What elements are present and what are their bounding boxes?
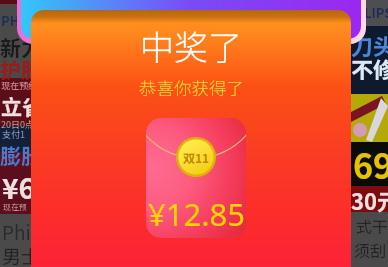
staticText: ¥12.85: [148, 193, 245, 235]
button[interactable]: 中奖了: [31, 10, 351, 267]
staticText: ¥6: [2, 167, 34, 208]
staticText: 69: [353, 140, 388, 189]
staticText: 立省: [1, 91, 34, 121]
staticText: 男士: [2, 242, 34, 267]
staticText: Phili: [2, 218, 34, 246]
staticText: 支付1: [2, 128, 25, 141]
staticText: 20日0点: [1, 118, 34, 131]
staticText: 刀头: [351, 29, 388, 61]
staticText: 膨胀: [0, 140, 34, 170]
staticText: 双11: [183, 149, 210, 166]
staticText: 30元: [351, 184, 388, 216]
staticText: 新力: [0, 32, 34, 62]
staticText: 护肤: [0, 54, 34, 84]
staticText: PH: [1, 11, 20, 30]
staticText: 须刮: [354, 238, 387, 261]
staticText: 不修: [351, 52, 388, 84]
staticText: 式干: [356, 214, 388, 237]
staticText: 现在预约: [1, 79, 34, 92]
staticText: 现在预: [3, 201, 27, 213]
staticText: 恭喜你获得了: [139, 75, 244, 100]
staticText: 中奖了: [140, 21, 242, 70]
staticText: LIPS: [364, 3, 388, 22]
